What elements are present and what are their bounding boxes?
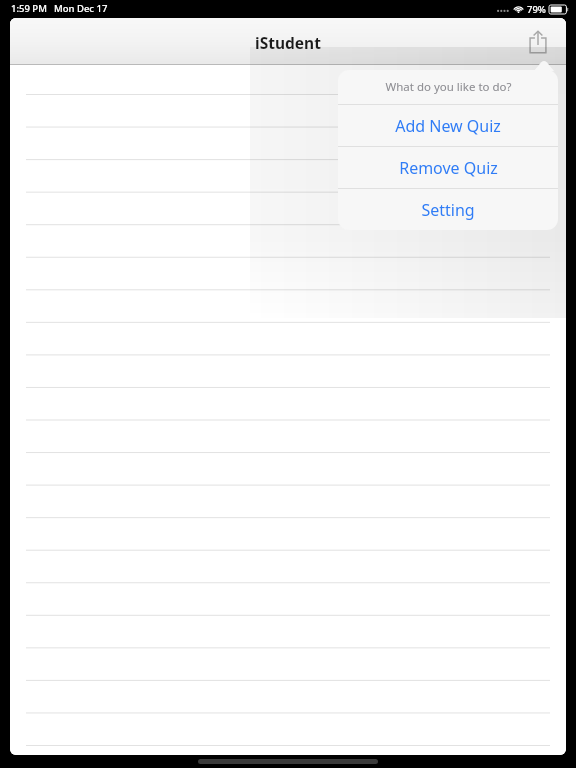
button[interactable]: Add New Quiz (338, 105, 558, 146)
button[interactable]: Share (520, 24, 556, 60)
staticText: 1:59 PM (11, 2, 47, 15)
button[interactable]: Remove Quiz (338, 147, 558, 188)
staticText: iStudent (255, 32, 321, 53)
staticText: 79% (527, 3, 546, 16)
button[interactable]: Setting (338, 189, 558, 230)
staticText: What do you like to do? (385, 79, 512, 95)
staticText: Remove Quiz (399, 157, 498, 179)
staticText: Setting (421, 199, 475, 221)
staticText: Add New Quiz (395, 115, 501, 137)
staticText: Mon Dec 17 (54, 2, 108, 15)
